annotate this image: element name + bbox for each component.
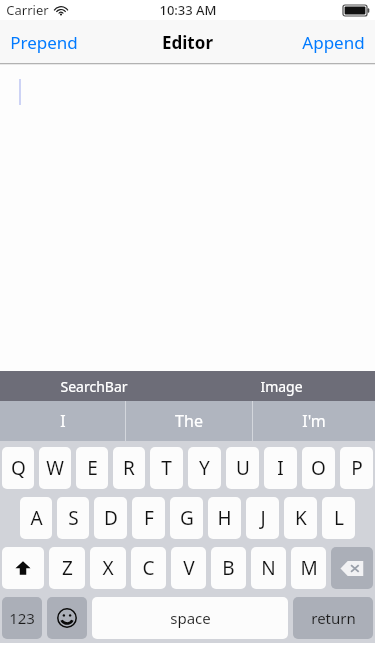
button[interactable]: O (302, 447, 335, 489)
staticText: space (170, 608, 211, 628)
staticText: A (30, 505, 43, 531)
staticText: O (311, 455, 326, 481)
staticText: Prepend (10, 31, 78, 54)
staticText: D (104, 505, 118, 531)
staticText: Carrier (6, 1, 49, 19)
button[interactable]: Emoji (47, 597, 87, 639)
button[interactable]: M (291, 547, 326, 589)
button[interactable]: S (57, 497, 89, 539)
button[interactable]: F (132, 497, 165, 539)
staticText: 10:33 AM (159, 1, 217, 19)
staticText: B (222, 555, 235, 581)
button[interactable]: Prepend (0, 20, 88, 64)
button[interactable]: Z (49, 547, 85, 589)
staticText: E (87, 455, 98, 481)
staticText: Q (11, 455, 26, 481)
staticText: W (46, 455, 64, 481)
button[interactable]: E (76, 447, 108, 489)
button[interactable]: Shift (2, 547, 44, 589)
staticText: X (102, 555, 114, 581)
button[interactable]: K (284, 497, 317, 539)
button[interactable]: V (171, 547, 206, 589)
button[interactable]: The (126, 401, 252, 441)
button[interactable]: J (246, 497, 279, 539)
button[interactable]: Image (187, 371, 375, 401)
staticText: Append (302, 31, 365, 54)
staticText: Image (260, 377, 303, 396)
staticText: The (175, 410, 203, 432)
button[interactable]: H (208, 497, 241, 539)
button[interactable]: T (150, 447, 183, 489)
button[interactable]: Q (2, 447, 34, 489)
staticText: S (68, 505, 79, 531)
staticText: I (277, 455, 284, 481)
button[interactable]: X (90, 547, 126, 589)
staticText: T (161, 455, 172, 481)
staticText: Y (199, 455, 210, 481)
button[interactable]: D (94, 497, 127, 539)
button[interactable]: I'm (253, 401, 375, 441)
button[interactable]: Append (292, 20, 375, 64)
staticText: K (295, 505, 307, 531)
button[interactable]: 123 (2, 597, 42, 639)
button[interactable]: B (211, 547, 246, 589)
staticText: return (311, 608, 356, 628)
staticText: F (144, 505, 154, 531)
staticText: Editor (162, 31, 213, 54)
button[interactable]: SearchBar (0, 371, 187, 401)
staticText: N (261, 555, 276, 581)
button[interactable]: C (131, 547, 166, 589)
button[interactable]: Backspace (331, 547, 373, 589)
button[interactable]: space (92, 597, 288, 639)
staticText: 123 (9, 608, 35, 628)
staticText: V (183, 555, 195, 581)
button[interactable]: N (251, 547, 286, 589)
staticText: C (142, 555, 155, 581)
staticText: P (351, 455, 363, 481)
button[interactable]: L (322, 497, 355, 539)
staticText: I (60, 410, 66, 432)
button[interactable]: Y (188, 447, 221, 489)
button[interactable]: A (20, 497, 52, 539)
staticText: R (123, 455, 135, 481)
staticText: L (334, 505, 344, 531)
button[interactable]: I (264, 447, 297, 489)
button[interactable]: P (340, 447, 373, 489)
staticText: J (260, 505, 266, 531)
staticText: Z (62, 555, 73, 581)
staticText: SearchBar (60, 377, 128, 396)
staticText: M (300, 555, 318, 581)
button[interactable]: return (293, 597, 373, 639)
staticText: I'm (302, 410, 326, 432)
staticText: G (180, 505, 194, 531)
button[interactable]: I (0, 401, 125, 441)
staticText: U (236, 455, 250, 481)
button[interactable]: R (113, 447, 145, 489)
button[interactable]: W (39, 447, 71, 489)
button[interactable]: U (226, 447, 259, 489)
button[interactable]: G (170, 497, 203, 539)
staticText: H (217, 505, 232, 531)
